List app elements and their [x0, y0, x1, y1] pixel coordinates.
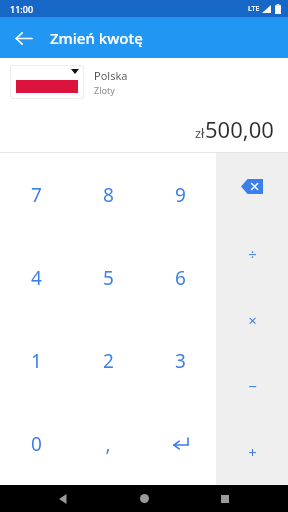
staticText: Polska	[94, 68, 128, 83]
button[interactable]: 0	[0, 402, 72, 485]
button[interactable]: 2	[72, 319, 144, 402]
button[interactable]: −	[216, 353, 288, 419]
button[interactable]: 8	[72, 153, 144, 236]
button[interactable]: Backspace	[216, 153, 288, 220]
staticText: 0	[31, 431, 42, 457]
staticText: Zloty	[94, 84, 115, 96]
staticText: 8	[103, 182, 114, 208]
button[interactable]: Polska	[0, 58, 288, 106]
staticText: LTE	[248, 4, 260, 14]
button[interactable]: Back	[45, 485, 81, 512]
staticText: ÷	[248, 244, 257, 264]
staticText: +	[248, 442, 257, 462]
staticText: ,	[105, 431, 111, 457]
button[interactable]: +	[216, 419, 288, 485]
button[interactable]: Back	[6, 21, 40, 55]
button[interactable]: 4	[0, 236, 72, 319]
button[interactable]: zł	[0, 106, 288, 152]
button[interactable]: ,	[72, 402, 144, 485]
button[interactable]: 9	[144, 153, 216, 236]
button[interactable]: Home	[126, 485, 162, 512]
button[interactable]: 1	[0, 319, 72, 402]
staticText: 9	[175, 182, 186, 208]
staticText: 1	[31, 348, 42, 374]
staticText: 11:00	[10, 3, 34, 15]
staticText: zł	[195, 124, 205, 142]
button[interactable]: 5	[72, 236, 144, 319]
button[interactable]: 6	[144, 236, 216, 319]
staticText: −	[248, 376, 257, 396]
staticText: 5	[103, 265, 114, 291]
button[interactable]: Enter	[144, 402, 216, 485]
button[interactable]: ×	[216, 287, 288, 353]
staticText: 2	[103, 348, 114, 374]
button[interactable]: 3	[144, 319, 216, 402]
staticText: 3	[175, 348, 186, 374]
staticText: 7	[31, 182, 42, 208]
staticText: 4	[31, 265, 42, 291]
button[interactable]: 7	[0, 153, 72, 236]
staticText: 500,00	[205, 114, 274, 144]
staticText: 6	[175, 265, 186, 291]
staticText: ×	[248, 310, 257, 330]
staticText: Zmień kwotę	[50, 28, 143, 48]
button[interactable]: Recents	[207, 485, 243, 512]
button[interactable]: ÷	[216, 220, 288, 287]
